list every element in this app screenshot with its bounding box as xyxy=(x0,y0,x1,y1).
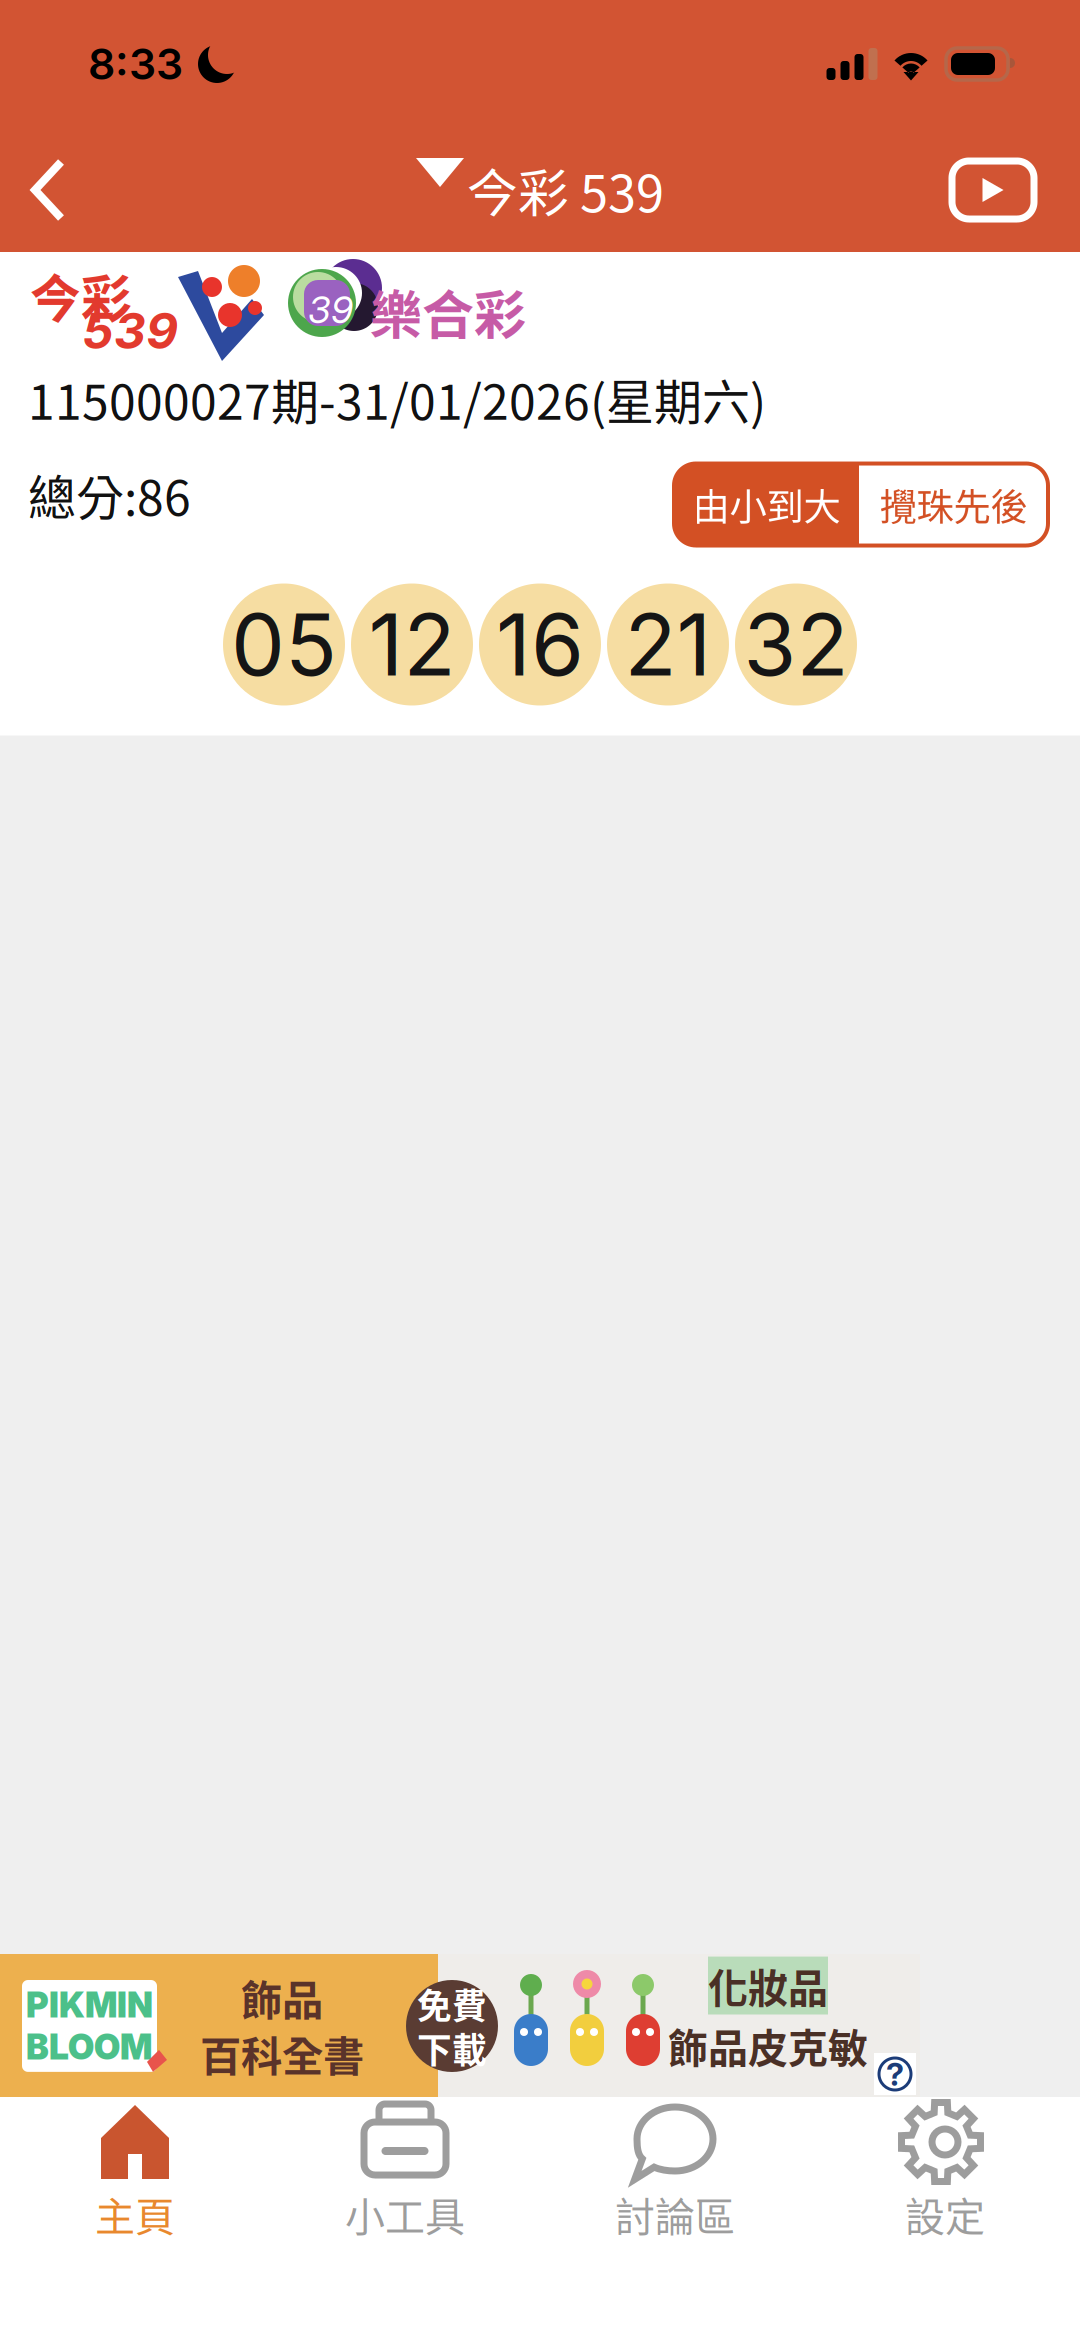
button[interactable]: 今彩 539 xyxy=(416,128,664,252)
staticText: 21 xyxy=(624,593,711,696)
staticText: 主頁 xyxy=(95,2185,175,2243)
staticText: 今彩 xyxy=(30,259,132,332)
staticText: PIKMIN xyxy=(26,1984,153,2026)
staticText: 539 xyxy=(82,301,178,361)
staticText: 討論區 xyxy=(615,2185,735,2243)
staticText: ? xyxy=(886,2055,904,2093)
staticText: BLOOM xyxy=(26,2026,152,2068)
staticText: 小工具 xyxy=(345,2185,465,2243)
staticText: 39 xyxy=(308,287,353,332)
staticText: 今彩 539 xyxy=(467,153,664,227)
button[interactable]: 討論區 xyxy=(540,2097,810,2337)
staticText: 32 xyxy=(743,593,848,696)
button[interactable]: 設定 xyxy=(810,2097,1080,2337)
button[interactable]: Back xyxy=(0,128,96,252)
staticText: 8:33 xyxy=(88,38,183,90)
staticText: 下載 xyxy=(417,2023,487,2073)
staticText: 樂合彩 xyxy=(370,274,526,349)
staticText: 飾品皮克敏 xyxy=(668,2016,868,2074)
staticText: 16 xyxy=(496,593,584,696)
staticText: 總分:86 xyxy=(28,460,191,529)
button[interactable]: 攪珠先後 xyxy=(859,463,1048,545)
staticText: 化妝品 xyxy=(708,1957,828,2014)
staticText: 設定 xyxy=(905,2185,985,2243)
staticText: 百科全書 xyxy=(200,2023,364,2083)
button[interactable]: 小工具 xyxy=(270,2097,540,2337)
staticText: 12 xyxy=(368,593,455,696)
button[interactable]: 由小到大 xyxy=(674,463,859,545)
staticText: 免費 xyxy=(417,1979,487,2029)
staticText: 飾品 xyxy=(241,1968,323,2027)
staticText: 115000027期-31/01/2026(星期六) xyxy=(28,364,766,433)
button[interactable]: 主頁 xyxy=(0,2097,270,2337)
staticText: 由小到大 xyxy=(692,477,840,532)
button[interactable]: Video xyxy=(927,128,1059,252)
staticText: 05 xyxy=(231,593,337,696)
staticText: 攪珠先後 xyxy=(879,477,1027,532)
button[interactable]: PIKMIN xyxy=(0,1954,1080,2097)
